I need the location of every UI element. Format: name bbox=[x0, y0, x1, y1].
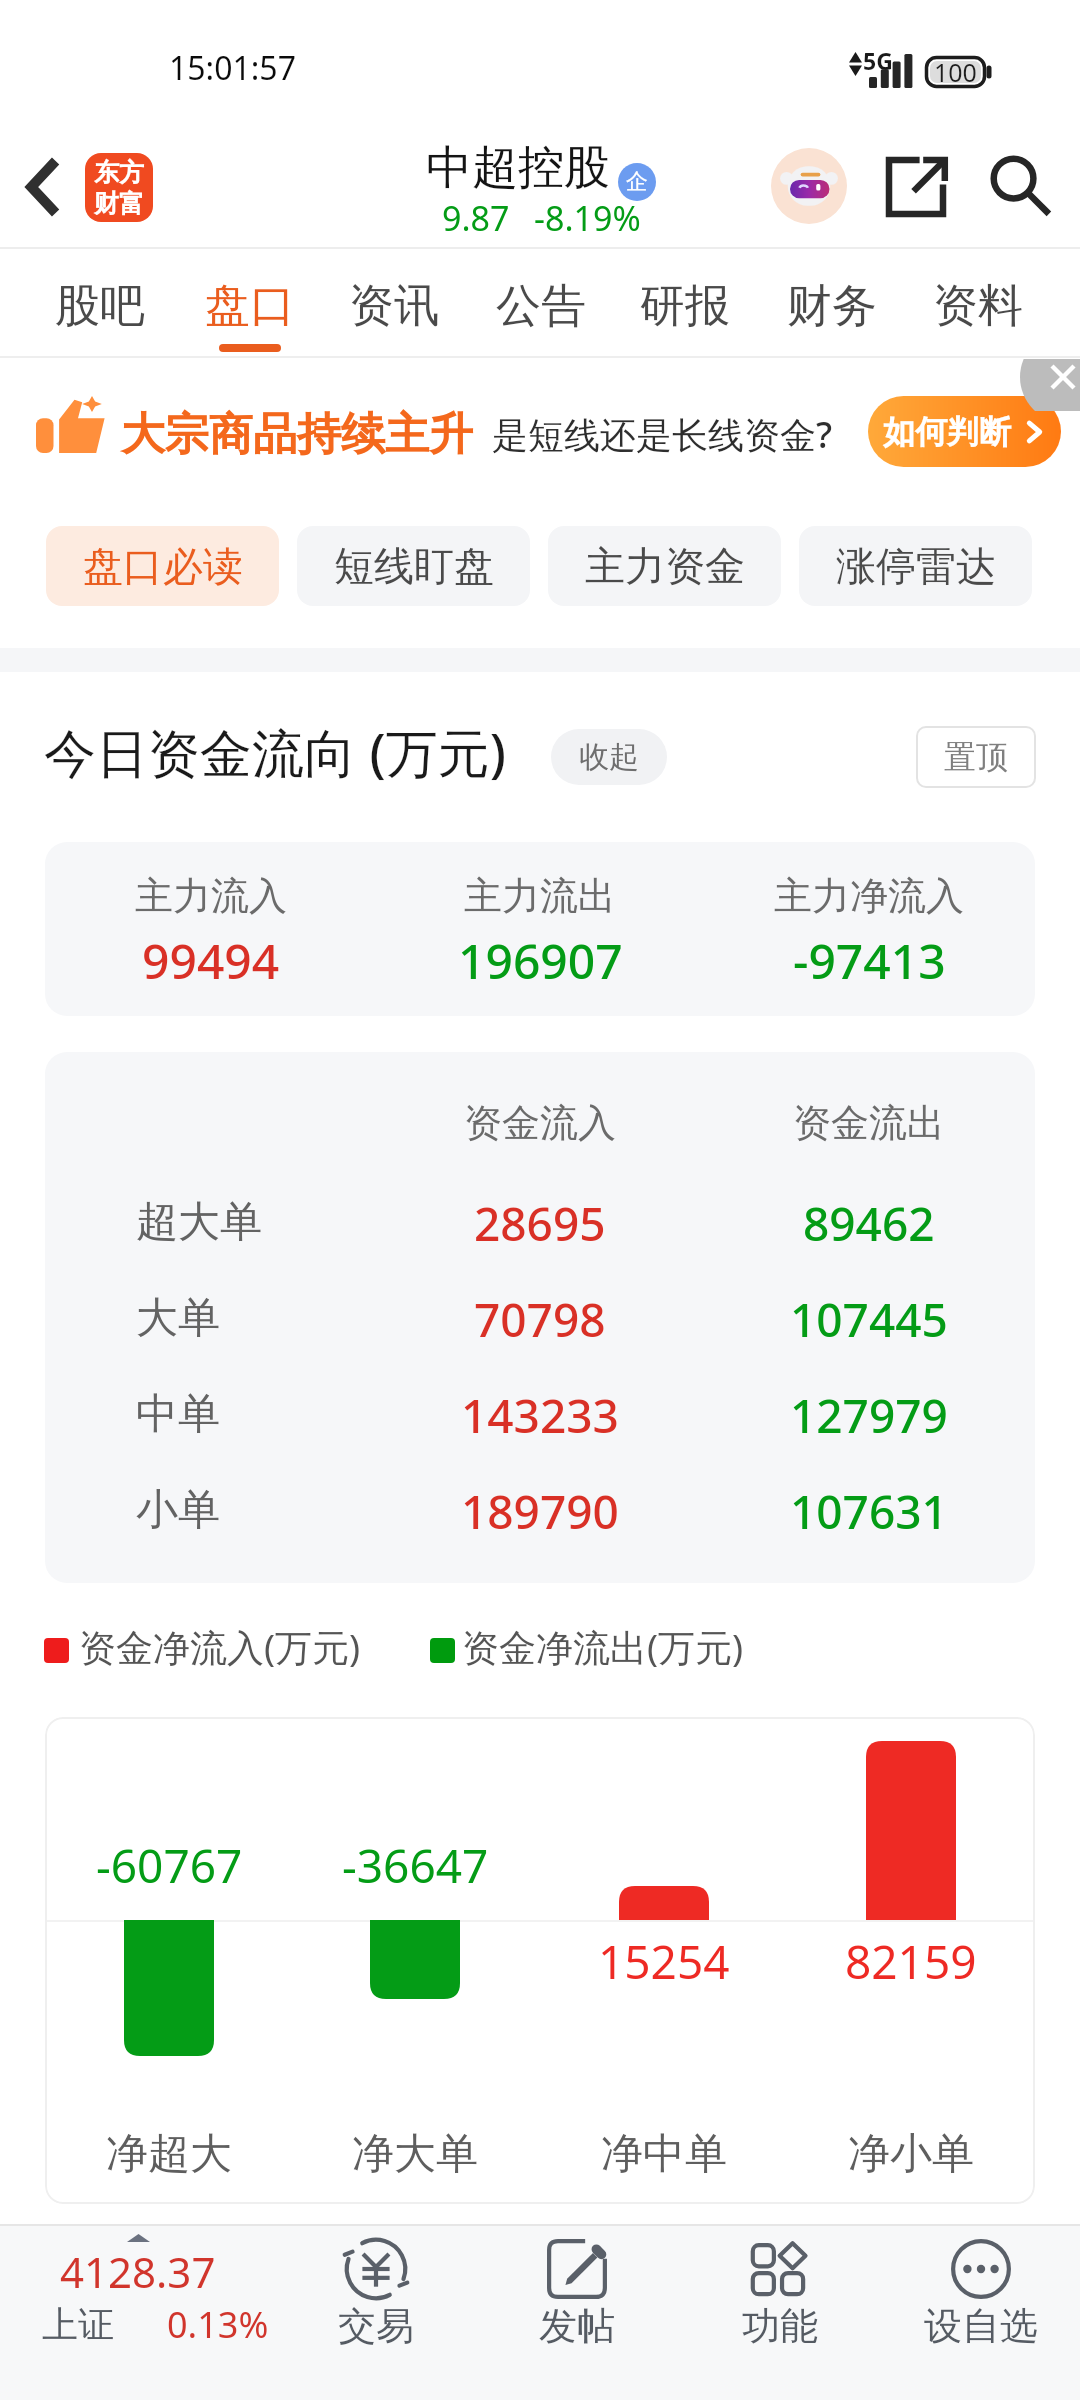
staticText: 净大单 bbox=[352, 2128, 478, 2181]
staticText: 0.13% bbox=[167, 2300, 269, 2349]
button[interactable]: 设自选 bbox=[886, 2224, 1076, 2400]
staticText: 大宗商品持续主升 bbox=[121, 407, 473, 462]
staticText: 15:01:57 bbox=[169, 46, 296, 90]
staticText: 净超大 bbox=[106, 2128, 232, 2181]
staticText: 今日资金流向 (万元) bbox=[44, 716, 506, 787]
staticText: 主力流入 bbox=[135, 872, 287, 918]
button[interactable]: Search bbox=[981, 146, 1061, 226]
staticText: 财富 bbox=[94, 188, 144, 219]
staticText: 28695 bbox=[474, 1192, 606, 1252]
button[interactable]: 发帖 bbox=[482, 2224, 672, 2400]
staticText: 资料 bbox=[933, 278, 1023, 335]
button[interactable]: -60767 bbox=[45, 1717, 1035, 2204]
staticText: 资金流入 bbox=[464, 1099, 616, 1147]
staticText: -97413 bbox=[793, 928, 946, 984]
staticText: 研报 bbox=[640, 278, 730, 335]
staticText: 15254 bbox=[598, 1930, 730, 1986]
staticText: 公告 bbox=[496, 278, 586, 335]
staticText: 107445 bbox=[790, 1288, 948, 1348]
staticText: 盘口必读 bbox=[83, 541, 243, 591]
staticText: 净小单 bbox=[848, 2128, 974, 2181]
staticText: 短线盯盘 bbox=[334, 541, 494, 591]
staticText: 是短线还是长线资金? bbox=[492, 410, 833, 459]
staticText: 企 bbox=[626, 168, 648, 196]
staticText: 净中单 bbox=[601, 2128, 727, 2181]
staticText: 5G bbox=[863, 45, 893, 76]
staticText: 大单 bbox=[136, 1292, 220, 1345]
staticText: 107631 bbox=[790, 1480, 948, 1540]
staticText: 超大单 bbox=[136, 1196, 262, 1249]
staticText: 143233 bbox=[461, 1384, 619, 1444]
staticText: 196907 bbox=[458, 928, 623, 984]
staticText: 99494 bbox=[142, 928, 280, 984]
button[interactable]: Close ad bbox=[1020, 359, 1080, 411]
staticText: 主力净流入 bbox=[774, 872, 964, 918]
button[interactable]: Back bbox=[3, 147, 83, 227]
staticText: 70798 bbox=[474, 1288, 606, 1348]
staticText: 资金流出 bbox=[793, 1099, 945, 1147]
staticText: 4128.37 bbox=[60, 2243, 216, 2297]
staticText: 资金净流入(万元) bbox=[79, 1621, 361, 1672]
staticText: 发帖 bbox=[539, 2302, 615, 2350]
button[interactable]: 如何判断 bbox=[868, 396, 1061, 467]
button[interactable]: 盘口必读 bbox=[46, 526, 279, 606]
staticText: -8.19% bbox=[534, 195, 641, 241]
staticText: 9.87 bbox=[442, 195, 510, 241]
button[interactable]: 研报 bbox=[611, 278, 759, 358]
staticText: -36647 bbox=[342, 1834, 489, 1890]
button[interactable]: East Money bbox=[85, 153, 153, 222]
staticText: 89462 bbox=[803, 1192, 935, 1252]
staticText: 100 bbox=[934, 55, 977, 89]
staticText: -60767 bbox=[96, 1834, 243, 1890]
staticText: 东方 bbox=[94, 157, 144, 188]
staticText: 盘口 bbox=[205, 278, 295, 335]
staticText: 127979 bbox=[790, 1384, 948, 1444]
staticText: 82159 bbox=[845, 1930, 977, 1986]
staticText: 收起 bbox=[579, 738, 639, 776]
staticText: 主力流出 bbox=[464, 872, 616, 918]
button[interactable]: 短线盯盘 bbox=[297, 526, 530, 606]
staticText: 资金净流出(万元) bbox=[462, 1621, 744, 1672]
button[interactable]: 主力资金 bbox=[548, 526, 781, 606]
button[interactable]: 资讯 bbox=[320, 278, 468, 358]
button[interactable]: 资料 bbox=[904, 278, 1052, 358]
staticText: 资讯 bbox=[349, 278, 439, 335]
staticText: 功能 bbox=[742, 2302, 818, 2350]
staticText: 主力资金 bbox=[585, 541, 745, 591]
button[interactable]: 财务 bbox=[758, 278, 906, 358]
staticText: 设自选 bbox=[924, 2302, 1038, 2350]
button[interactable]: 功能 bbox=[685, 2224, 875, 2400]
button[interactable]: 涨停雷达 bbox=[799, 526, 1032, 606]
staticText: 小单 bbox=[136, 1484, 220, 1537]
staticText: 财务 bbox=[787, 278, 877, 335]
staticText: 上证 bbox=[42, 2302, 114, 2347]
button[interactable]: 资金流入 bbox=[45, 1052, 1035, 1583]
button[interactable]: Share bbox=[876, 147, 956, 227]
button[interactable]: AI assistant bbox=[771, 148, 847, 224]
button[interactable]: 公告 bbox=[467, 278, 615, 358]
button[interactable]: 4128.37 bbox=[0, 2224, 310, 2400]
staticText: 股吧 bbox=[55, 278, 145, 335]
button[interactable]: 股吧 bbox=[26, 278, 174, 358]
staticText: 如何判断 bbox=[883, 412, 1011, 452]
button[interactable]: 交易 bbox=[281, 2224, 471, 2400]
button[interactable]: 主力流入 bbox=[45, 842, 1035, 1016]
staticText: 中单 bbox=[136, 1388, 220, 1441]
staticText: 交易 bbox=[338, 2302, 414, 2350]
button[interactable]: 大宗商品持续主升 bbox=[0, 358, 1080, 506]
staticText: 中超控股 bbox=[426, 139, 610, 195]
staticText: 涨停雷达 bbox=[836, 541, 996, 591]
staticText: 189790 bbox=[461, 1480, 619, 1540]
button[interactable]: 置顶 bbox=[916, 726, 1036, 788]
button[interactable]: 收起 bbox=[551, 729, 667, 785]
button[interactable]: 盘口 bbox=[176, 278, 324, 358]
staticText: 置顶 bbox=[944, 737, 1008, 777]
